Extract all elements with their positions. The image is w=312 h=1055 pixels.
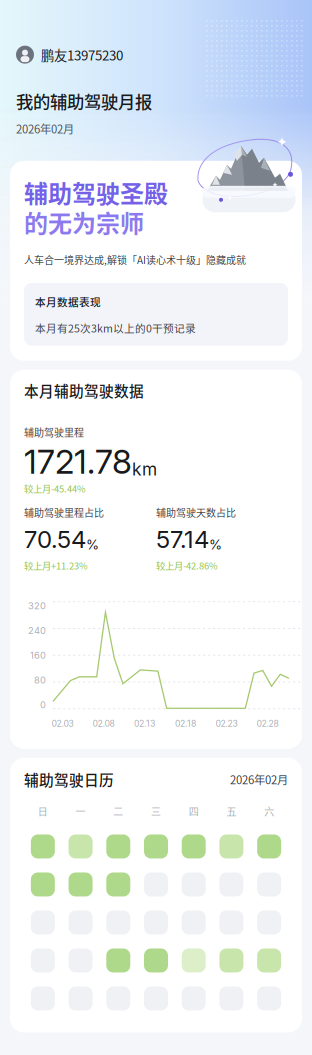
button[interactable]: 鹏友13975230 [16, 45, 296, 64]
staticText: 辅助驾驶圣殿 [24, 175, 168, 210]
staticText: 的无为宗师 [24, 205, 144, 239]
staticText: 320 [28, 600, 46, 611]
staticText: 一 [76, 804, 86, 818]
staticText: 人车合一境界达成,解锁「AI读心术十级」隐藏成就 [24, 252, 246, 267]
staticText: 五 [226, 804, 236, 818]
staticText: 1721.78 [24, 441, 132, 482]
staticText: 0 [40, 699, 46, 710]
staticText: 较上月-42.86% [156, 559, 218, 572]
staticText: 2026年02月 [16, 120, 74, 137]
staticText: 57.14 [156, 525, 209, 554]
staticText: % [209, 537, 222, 553]
staticText: 02.08 [92, 718, 114, 729]
staticText: 02.23 [215, 718, 237, 729]
staticText: % [86, 537, 99, 553]
staticText: 2026年02月 [230, 771, 288, 788]
staticText: 三 [151, 804, 161, 818]
staticText: 本月有25次3km以上的0干预记录 [35, 320, 196, 336]
staticText: 70.54 [24, 525, 86, 554]
staticText: 02.13 [134, 718, 155, 729]
staticText: 较上月+11.23% [24, 559, 88, 572]
staticText: 240 [28, 625, 46, 636]
staticText: 二 [113, 804, 123, 818]
staticText: 02.28 [256, 718, 278, 729]
staticText: 02.18 [175, 718, 196, 729]
staticText: 辅助驾驶里程 [24, 425, 84, 439]
staticText: km [132, 459, 157, 480]
staticText: 02.03 [51, 718, 73, 729]
staticText: 日 [38, 804, 48, 818]
staticText: 辅助驾驶天数占比 [156, 505, 236, 520]
staticText: 辅助驾驶日历 [24, 769, 114, 790]
staticText: 较上月-45.44% [24, 482, 86, 495]
staticText: 鹏友13975230 [41, 45, 123, 64]
staticText: 本月辅助驾驶数据 [24, 380, 144, 401]
staticText: 辅助驾驶里程占比 [24, 505, 104, 520]
staticText: 80 [34, 674, 46, 686]
staticText: 160 [30, 650, 46, 661]
staticText: 我的辅助驾驶月报 [16, 88, 152, 113]
staticText: 本月数据表现 [35, 294, 101, 309]
staticText: 六 [264, 804, 274, 818]
staticText: 四 [189, 804, 199, 818]
